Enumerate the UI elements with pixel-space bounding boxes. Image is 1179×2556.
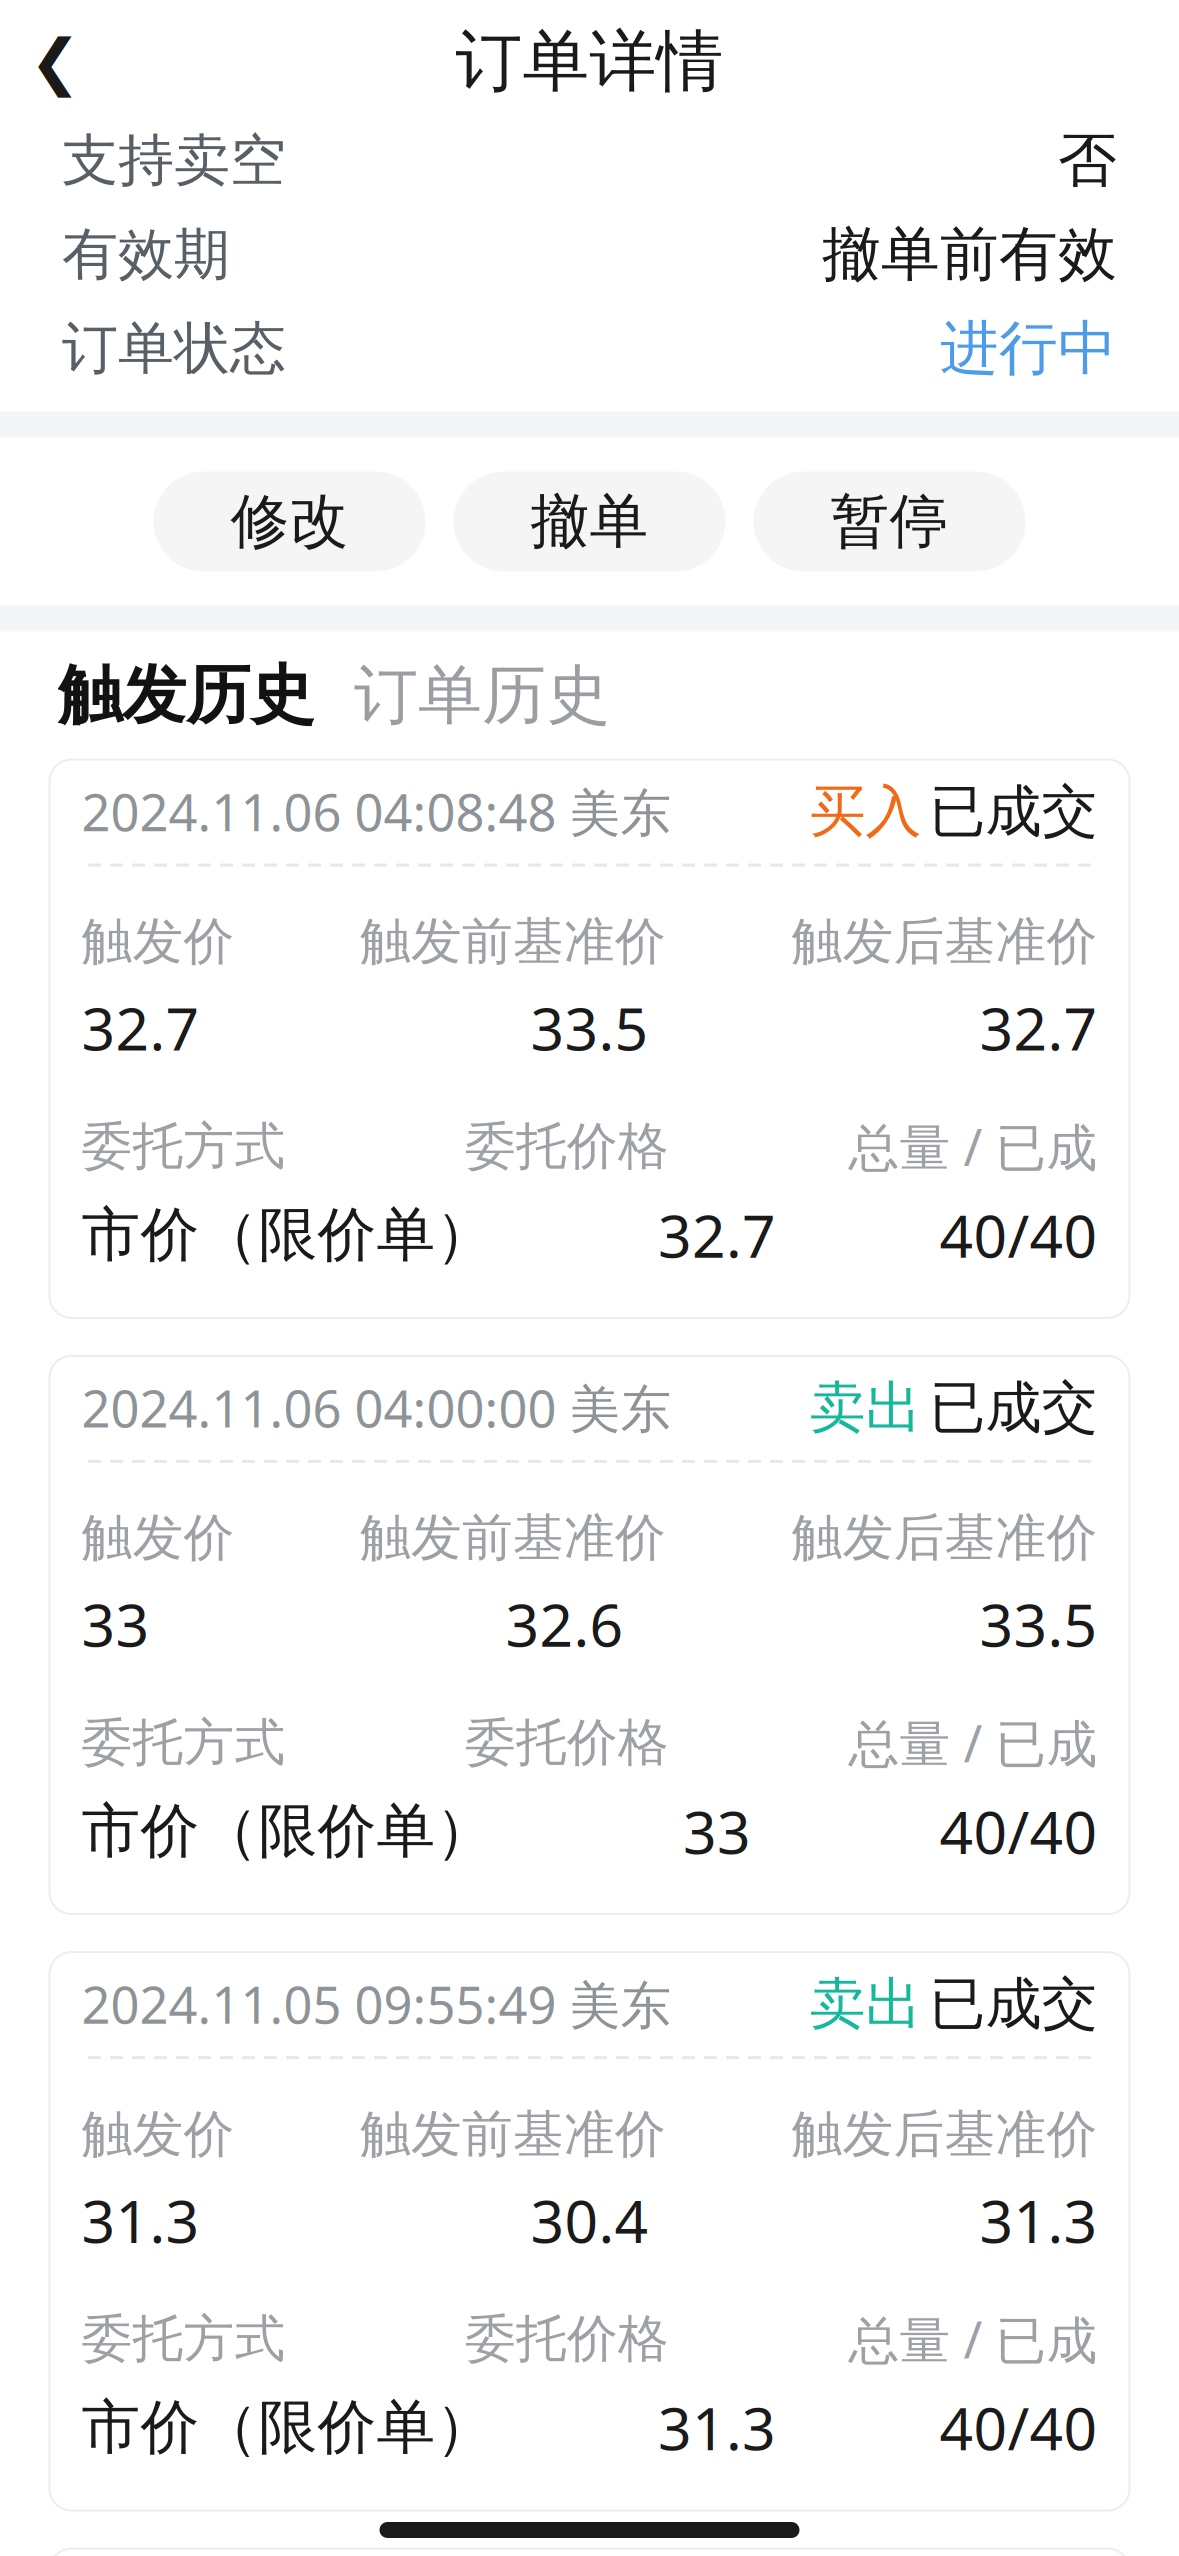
staticText: 已成交 <box>929 777 1097 846</box>
staticText: 触发价 <box>81 2103 234 2165</box>
staticText: 32.7 <box>658 1196 776 1274</box>
button[interactable]: 2024.11.06 04:00:00 美东 <box>49 1356 1129 1914</box>
staticText: 委托价格 <box>465 2308 669 2370</box>
staticText: 触发前基准价 <box>360 2103 666 2165</box>
staticText: 有效期 <box>62 220 230 289</box>
staticText: 总量 / 已成 <box>848 2305 1097 2373</box>
staticText: 触发历史 <box>58 656 314 735</box>
staticText: 暂停 <box>830 485 948 558</box>
staticText: 32.7 <box>979 989 1097 1067</box>
staticText: 已成交 <box>929 1373 1097 1442</box>
button[interactable]: 订单历史 <box>354 656 610 735</box>
staticText: 32.6 <box>505 1585 623 1663</box>
staticText: 卖出 <box>809 1373 921 1442</box>
staticText: 31.3 <box>81 2181 199 2259</box>
staticText: 32.7 <box>81 989 199 1067</box>
staticText: 2024.11.06 04:00:00 美东 <box>81 1374 671 1441</box>
staticText: 委托价格 <box>465 1115 669 1177</box>
staticText: 总量 / 已成 <box>848 1113 1097 1180</box>
staticText: 31.3 <box>979 2181 1097 2259</box>
staticText: 33.5 <box>979 1585 1097 1663</box>
staticText: 卖出 <box>809 1970 921 2039</box>
staticText: 订单状态 <box>62 314 286 383</box>
staticText: 买入 <box>809 777 921 846</box>
staticText: 撤单前有效 <box>822 218 1117 291</box>
button[interactable]: 2024.11.06 04:08:48 美东 <box>49 759 1129 1318</box>
staticText: 触发前基准价 <box>360 910 666 973</box>
staticText: 订单详情 <box>455 21 723 102</box>
staticText: 40/40 <box>939 1196 1097 1274</box>
staticText: 委托方式 <box>81 1115 285 1177</box>
staticText: 订单历史 <box>354 656 610 735</box>
button[interactable]: 修改 <box>153 471 425 571</box>
staticText: 触发后基准价 <box>791 1507 1097 1569</box>
button[interactable]: 撤单 <box>453 471 725 571</box>
staticText: 市价（限价单） <box>81 2391 494 2464</box>
staticText: 30.4 <box>530 2181 648 2259</box>
staticText: 触发后基准价 <box>791 910 1097 973</box>
staticText: 支持卖空 <box>62 126 286 195</box>
staticText: 委托价格 <box>465 1711 669 1774</box>
staticText: 进行中 <box>940 312 1117 385</box>
staticText: 40/40 <box>939 1792 1097 1870</box>
button[interactable]: 2024.11.05 09:55:49 美东 <box>49 1952 1129 2510</box>
staticText: 33 <box>683 1792 751 1870</box>
staticText: 修改 <box>230 485 348 558</box>
staticText: 委托方式 <box>81 1711 285 1774</box>
staticText: 总量 / 已成 <box>848 1709 1097 1776</box>
staticText: 否 <box>1058 124 1117 197</box>
staticText: 触发后基准价 <box>791 2103 1097 2165</box>
staticText: 触发价 <box>81 910 234 973</box>
staticText: ❮ <box>29 27 80 96</box>
staticText: 触发前基准价 <box>360 1507 666 1569</box>
button[interactable]: 返回 <box>0 11 110 111</box>
staticText: 33.5 <box>530 989 648 1067</box>
staticText: 33 <box>81 1585 149 1663</box>
staticText: 2024.11.06 04:08:48 美东 <box>81 778 671 845</box>
staticText: 撤单 <box>530 485 648 558</box>
staticText: 市价（限价单） <box>81 1795 494 1867</box>
button[interactable]: 暂停 <box>753 471 1025 571</box>
staticText: 2024.11.05 09:55:49 美东 <box>81 1970 671 2038</box>
staticText: 40/40 <box>939 2389 1097 2466</box>
staticText: 已成交 <box>929 1970 1097 2039</box>
staticText: 触发价 <box>81 1507 234 1569</box>
button[interactable]: 触发历史 <box>58 656 314 735</box>
staticText: 委托方式 <box>81 2308 285 2370</box>
staticText: 市价（限价单） <box>81 1199 494 1271</box>
staticText: 31.3 <box>658 2389 776 2466</box>
